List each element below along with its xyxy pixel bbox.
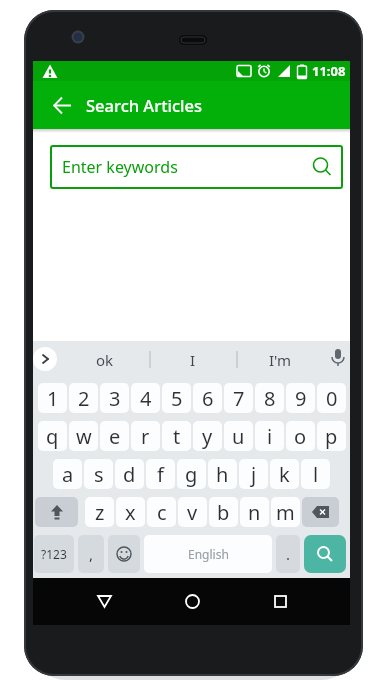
staticText: 4 <box>140 385 152 412</box>
staticText: Enter keywords <box>62 156 178 178</box>
staticText: 7 <box>233 385 245 412</box>
staticText: p <box>325 423 338 450</box>
staticText: x <box>125 499 136 526</box>
button[interactable] <box>38 81 86 129</box>
staticText: f <box>157 461 164 488</box>
button[interactable] <box>302 497 339 527</box>
button[interactable] <box>33 347 57 371</box>
staticText: 3 <box>109 385 121 412</box>
staticText: e <box>109 423 121 450</box>
staticText: . <box>286 544 291 564</box>
button[interactable]: , <box>78 535 104 573</box>
staticText: ok <box>96 350 114 370</box>
button[interactable]: u <box>224 421 253 451</box>
button[interactable]: m <box>271 497 300 527</box>
staticText: I'm <box>269 350 292 370</box>
staticText: m <box>276 499 295 526</box>
staticText: I <box>190 350 196 370</box>
staticText: g <box>185 461 198 488</box>
button[interactable]: I <box>165 341 221 378</box>
button[interactable]: 0 <box>317 383 346 413</box>
button[interactable]: d <box>115 459 144 489</box>
button[interactable]: w <box>69 421 98 451</box>
button[interactable]: 4 <box>131 383 160 413</box>
staticText: 1 <box>47 385 59 412</box>
staticText: 6 <box>202 385 214 412</box>
button[interactable]: x <box>116 497 145 527</box>
staticText: Search Articles <box>86 94 202 116</box>
button[interactable]: r <box>131 421 160 451</box>
staticText: s <box>94 461 104 488</box>
staticText: i <box>267 423 273 450</box>
staticText: b <box>217 499 230 526</box>
button[interactable]: b <box>209 497 238 527</box>
button[interactable] <box>304 535 346 573</box>
button[interactable]: ok <box>77 341 133 378</box>
staticText: 5 <box>171 385 183 412</box>
button[interactable]: q <box>38 421 67 451</box>
staticText: 11:08 <box>312 62 346 80</box>
button[interactable]: p <box>317 421 346 451</box>
button[interactable]: l <box>301 459 330 489</box>
button[interactable]: y <box>193 421 222 451</box>
button[interactable]: o <box>286 421 315 451</box>
button[interactable]: h <box>208 459 237 489</box>
button[interactable]: t <box>162 421 191 451</box>
button[interactable]: v <box>178 497 207 527</box>
button[interactable]: n <box>240 497 269 527</box>
staticText: 2 <box>78 385 90 412</box>
staticText: v <box>187 499 198 526</box>
staticText: q <box>46 423 59 450</box>
staticText: d <box>123 461 136 488</box>
staticText: English <box>188 546 229 562</box>
button[interactable] <box>250 578 310 625</box>
staticText: k <box>279 461 290 488</box>
button[interactable]: z <box>85 497 114 527</box>
button[interactable]: 5 <box>162 383 191 413</box>
button[interactable]: ?123 <box>34 535 74 573</box>
staticText: z <box>95 499 105 526</box>
staticText: 9 <box>295 385 307 412</box>
button[interactable]: Enter keywords <box>50 145 343 189</box>
button[interactable]: 2 <box>69 383 98 413</box>
button[interactable]: . <box>276 535 300 573</box>
staticText: ?123 <box>41 546 67 562</box>
button[interactable]: k <box>270 459 299 489</box>
button[interactable]: 7 <box>224 383 253 413</box>
button[interactable]: a <box>53 459 82 489</box>
staticText: w <box>76 423 92 450</box>
button[interactable]: c <box>147 497 176 527</box>
button[interactable]: 8 <box>255 383 284 413</box>
button[interactable]: i <box>255 421 284 451</box>
button[interactable] <box>108 535 140 573</box>
staticText: r <box>141 423 150 450</box>
button[interactable]: 9 <box>286 383 315 413</box>
button[interactable]: 6 <box>193 383 222 413</box>
button[interactable] <box>35 497 78 527</box>
button[interactable] <box>74 578 134 625</box>
staticText: 8 <box>264 385 276 412</box>
staticText: u <box>232 423 245 450</box>
staticText: n <box>248 499 261 526</box>
button[interactable]: f <box>146 459 175 489</box>
staticText: l <box>313 461 319 488</box>
staticText: , <box>89 544 94 564</box>
staticText: a <box>62 461 74 488</box>
button[interactable]: 1 <box>38 383 67 413</box>
staticText: y <box>202 423 213 450</box>
button[interactable] <box>162 578 222 625</box>
staticText: t <box>173 423 181 450</box>
staticText: 0 <box>326 385 338 412</box>
staticText: c <box>157 499 167 526</box>
button[interactable]: e <box>100 421 129 451</box>
staticText: o <box>294 423 307 450</box>
button[interactable]: j <box>239 459 268 489</box>
staticText: h <box>216 461 229 488</box>
button[interactable]: 3 <box>100 383 129 413</box>
button[interactable]: I'm <box>252 341 308 378</box>
staticText: j <box>251 461 257 488</box>
button[interactable]: g <box>177 459 206 489</box>
button[interactable]: s <box>84 459 113 489</box>
button[interactable]: English <box>144 535 272 573</box>
